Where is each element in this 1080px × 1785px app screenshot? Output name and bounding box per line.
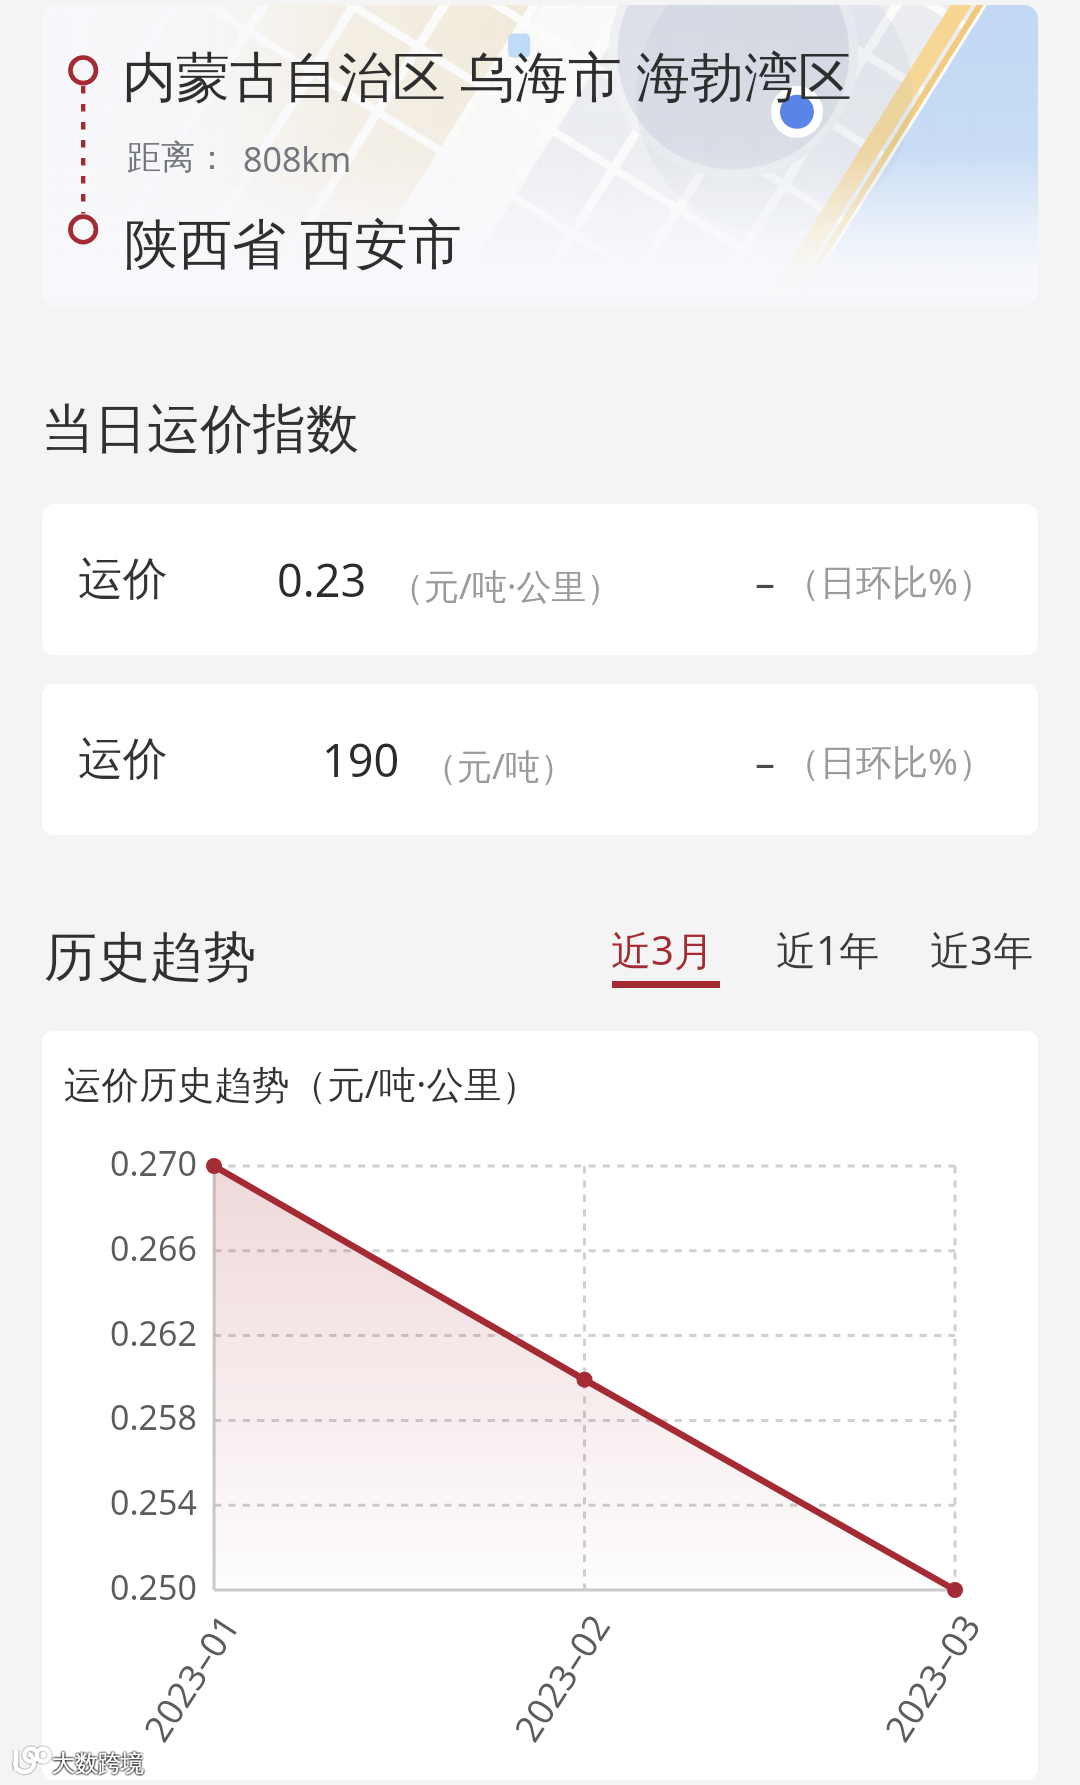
staticText: （元/吨·公里） [389, 562, 622, 610]
staticText: 内蒙古自治区 乌海市 海勃湾区 [122, 38, 853, 112]
staticText: 近1年 [776, 922, 879, 977]
staticText: （元/吨） [422, 742, 576, 790]
staticText: – [755, 734, 775, 788]
staticText: 运价历史趋势（元/吨·公里） [64, 1058, 540, 1109]
staticText: 运价 [78, 731, 168, 788]
staticText: 近3月 [611, 922, 714, 977]
staticText: （日环比%） [784, 737, 994, 786]
staticText: （日环比%） [784, 557, 994, 606]
staticText: 陕西省 西安市 [124, 205, 463, 279]
button[interactable]: 内蒙古自治区 乌海市 海勃湾区 [42, 5, 1038, 306]
button[interactable]: 近1年 [762, 908, 893, 991]
staticText: 190 [322, 729, 400, 790]
staticText: 当日运价指数 [41, 396, 359, 463]
staticText: 运价 [78, 551, 168, 608]
staticText: 近3年 [930, 922, 1033, 977]
button[interactable]: 近3年 [916, 908, 1047, 991]
button[interactable]: 运价 [42, 684, 1038, 835]
button[interactable]: 运价 [42, 504, 1038, 655]
staticText: 历史趋势 [44, 924, 256, 991]
staticText: 距离： [127, 136, 229, 179]
staticText: – [755, 554, 775, 608]
staticText: 0.23 [277, 549, 367, 610]
staticText: 808km [243, 136, 352, 182]
button[interactable]: 近3月 [594, 908, 730, 1002]
